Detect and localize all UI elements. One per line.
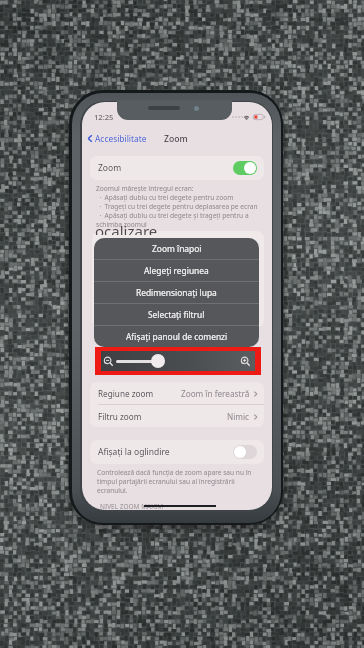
staticText: Selectați filtrul <box>148 309 205 320</box>
staticText: · Apăsați dublu cu trei degete pentru zo… <box>96 193 234 202</box>
button[interactable]: Zoom enabled <box>233 161 257 175</box>
button[interactable]: Regiune zoom <box>90 382 264 404</box>
staticText: · Trageți cu trei degete pentru deplasar… <box>96 202 258 211</box>
button[interactable]: Show on mirroring, off <box>233 445 257 459</box>
staticText: Zoom <box>98 162 122 174</box>
staticText: Accesibilitate <box>95 133 147 144</box>
staticText: · Apăsați dublu cu trei degete și trageț… <box>96 211 249 220</box>
button[interactable]: Selectați filtrul <box>94 304 259 325</box>
staticText: Regiune zoom <box>98 388 154 399</box>
staticText: Redimensionați lupa <box>136 287 217 298</box>
button[interactable]: Accesibilitate <box>87 132 147 144</box>
staticText: Controlează dacă funcția de zoom apare s… <box>97 468 252 477</box>
staticText: Nimic <box>227 411 250 422</box>
staticText: ocalizare <box>95 221 158 235</box>
button[interactable]: Filtru zoom <box>90 405 264 427</box>
staticText: Zoom înapoi <box>152 243 202 254</box>
staticText: 12:25 <box>94 112 114 122</box>
staticText: Zoom în fereastră <box>181 388 250 399</box>
staticText: schimba zoomul <box>96 220 147 229</box>
button[interactable]: Redimensionați lupa <box>94 282 259 303</box>
staticText: Afișați la oglindire <box>98 446 170 458</box>
staticText: Filtru zoom <box>98 411 142 422</box>
button[interactable]: Afișați la oglindire <box>90 440 264 464</box>
button[interactable]: Zoom level slider <box>101 351 255 371</box>
button[interactable]: Zoom înapoi <box>94 238 259 259</box>
staticText: Zoom <box>164 133 188 145</box>
staticText: NIVEL ZOOM MAXIM <box>100 502 164 510</box>
button[interactable]: Afișați panoul de comenzi <box>94 326 259 347</box>
staticText: Zoomul mărește întregul ecran: <box>96 184 194 193</box>
staticText: ecranului. <box>97 486 128 495</box>
button[interactable]: Alegeți regiunea <box>94 260 259 281</box>
button[interactable]: Zoom <box>90 156 264 180</box>
staticText: Afișați panoul de comenzi <box>126 331 228 342</box>
staticText: timpul partajării ecranului sau al înreg… <box>97 477 235 486</box>
staticText: Alegeți regiunea <box>144 265 209 276</box>
